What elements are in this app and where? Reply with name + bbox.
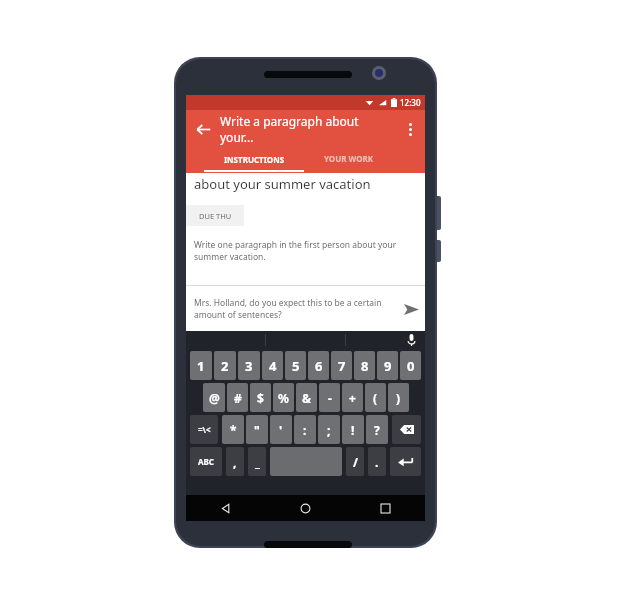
- staticText: Mrs. Holland, do you expect this to be a…: [194, 297, 397, 321]
- button[interactable]: *: [222, 415, 244, 444]
- staticText: &: [302, 390, 312, 406]
- button[interactable]: 2: [214, 351, 236, 380]
- button[interactable]: Enter: [390, 447, 421, 476]
- staticText: 8: [361, 357, 369, 375]
- staticText: :: [303, 422, 307, 438]
- staticText: ABC: [198, 456, 214, 467]
- staticText: about your summer vacation: [194, 175, 371, 193]
- staticText: ': [279, 422, 283, 438]
- button[interactable]: $: [250, 383, 271, 412]
- button[interactable]: Voice input: [346, 331, 425, 349]
- button[interactable]: 1: [190, 351, 212, 380]
- staticText: ): [396, 390, 401, 406]
- staticText: =\<: [198, 424, 211, 435]
- staticText: DUE THU: [199, 211, 232, 221]
- button[interactable]: ?: [366, 415, 388, 444]
- staticText: $: [257, 390, 264, 406]
- staticText: Write one paragraph in the first person …: [194, 239, 411, 263]
- staticText: INSTRUCTIONS: [224, 154, 285, 165]
- button[interactable]: YOUR WORK: [304, 147, 394, 173]
- button[interactable]: 5: [285, 351, 306, 380]
- button[interactable]: (: [365, 383, 386, 412]
- button[interactable]: /: [346, 447, 364, 476]
- button[interactable]: 8: [354, 351, 375, 380]
- staticText: 12:30: [400, 97, 421, 108]
- staticText: *: [230, 422, 237, 438]
- staticText: ": [254, 422, 260, 438]
- button[interactable]: 3: [238, 351, 260, 380]
- staticText: Write a paragraph about your...: [220, 113, 395, 145]
- staticText: +: [349, 390, 356, 406]
- staticText: 2: [221, 357, 229, 375]
- staticText: #: [234, 390, 242, 406]
- button[interactable]: Send: [397, 295, 425, 323]
- staticText: _: [255, 454, 260, 470]
- button[interactable]: ABC: [190, 447, 222, 476]
- button[interactable]: #: [227, 383, 248, 412]
- button[interactable]: ,: [226, 447, 244, 476]
- button[interactable]: :: [294, 415, 316, 444]
- staticText: YOUR WORK: [324, 153, 374, 164]
- staticText: 7: [338, 357, 346, 375]
- staticText: (: [373, 390, 378, 406]
- button[interactable]: 7: [331, 351, 352, 380]
- button[interactable]: Back: [186, 495, 265, 521]
- button[interactable]: Back: [186, 112, 220, 146]
- staticText: @: [209, 390, 220, 406]
- button[interactable]: 4: [262, 351, 283, 380]
- staticText: 5: [292, 357, 300, 375]
- button[interactable]: 0: [400, 351, 421, 380]
- staticText: -: [328, 390, 332, 406]
- button[interactable]: %: [273, 383, 294, 412]
- button[interactable]: Backspace: [392, 415, 421, 444]
- button[interactable]: ): [388, 383, 409, 412]
- staticText: !: [351, 422, 355, 438]
- button[interactable]: =\<: [190, 415, 218, 444]
- button[interactable]: Home: [265, 495, 345, 521]
- button[interactable]: +: [342, 383, 363, 412]
- staticText: ,: [233, 454, 237, 470]
- staticText: %: [278, 390, 289, 406]
- staticText: ;: [327, 422, 331, 438]
- button[interactable]: Recent apps: [345, 495, 425, 521]
- button[interactable]: &: [296, 383, 317, 412]
- button[interactable]: ;: [318, 415, 340, 444]
- button[interactable]: ": [246, 415, 268, 444]
- staticText: /: [353, 454, 358, 470]
- button[interactable]: .: [368, 447, 386, 476]
- button[interactable]: ': [270, 415, 292, 444]
- staticText: 4: [269, 357, 277, 375]
- staticText: 6: [315, 357, 323, 375]
- staticText: 1: [197, 357, 205, 375]
- staticText: 9: [384, 357, 392, 375]
- staticText: 0: [407, 357, 415, 375]
- button[interactable]: 9: [377, 351, 398, 380]
- button[interactable]: 6: [308, 351, 329, 380]
- button[interactable]: !: [342, 415, 364, 444]
- button[interactable]: @: [203, 383, 225, 412]
- staticText: .: [375, 454, 379, 470]
- staticText: 3: [245, 357, 253, 375]
- button[interactable]: _: [248, 447, 266, 476]
- button[interactable]: Mrs. Holland, do you expect this to be a…: [186, 286, 425, 331]
- button[interactable]: More options: [395, 114, 425, 144]
- staticText: ?: [374, 422, 380, 438]
- button[interactable]: -: [319, 383, 340, 412]
- button[interactable]: INSTRUCTIONS: [204, 147, 304, 173]
